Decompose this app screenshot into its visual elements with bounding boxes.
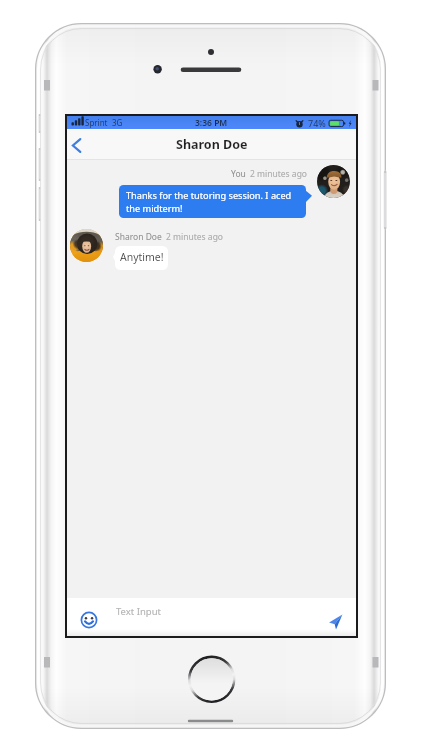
button[interactable]: Emoji bbox=[80, 611, 98, 629]
button[interactable]: Anytime! bbox=[115, 246, 168, 270]
button[interactable]: Thanks for the tutoring session. I aced … bbox=[119, 185, 306, 218]
staticText: Anytime! bbox=[120, 250, 164, 264]
staticText: 3:36 PM bbox=[195, 117, 228, 129]
staticText: You bbox=[231, 168, 246, 180]
staticText: Sprint bbox=[85, 117, 108, 128]
staticText: 2 minutes ago bbox=[250, 168, 308, 180]
staticText: 2 minutes ago bbox=[166, 231, 224, 243]
staticText: 74% bbox=[308, 117, 326, 129]
staticText: Text Input bbox=[116, 605, 161, 618]
staticText: Thanks for the tutoring session. I aced … bbox=[126, 189, 301, 215]
button[interactable]: Send bbox=[328, 613, 344, 630]
button[interactable]: Sharon Doe photo bbox=[70, 229, 103, 262]
button[interactable]: Back bbox=[67, 129, 91, 160]
staticText: Sharon Doe bbox=[176, 136, 248, 153]
staticText: Sharon Doe bbox=[115, 231, 162, 243]
button[interactable]: Your photo bbox=[317, 165, 350, 198]
staticText: 3G bbox=[112, 117, 123, 128]
